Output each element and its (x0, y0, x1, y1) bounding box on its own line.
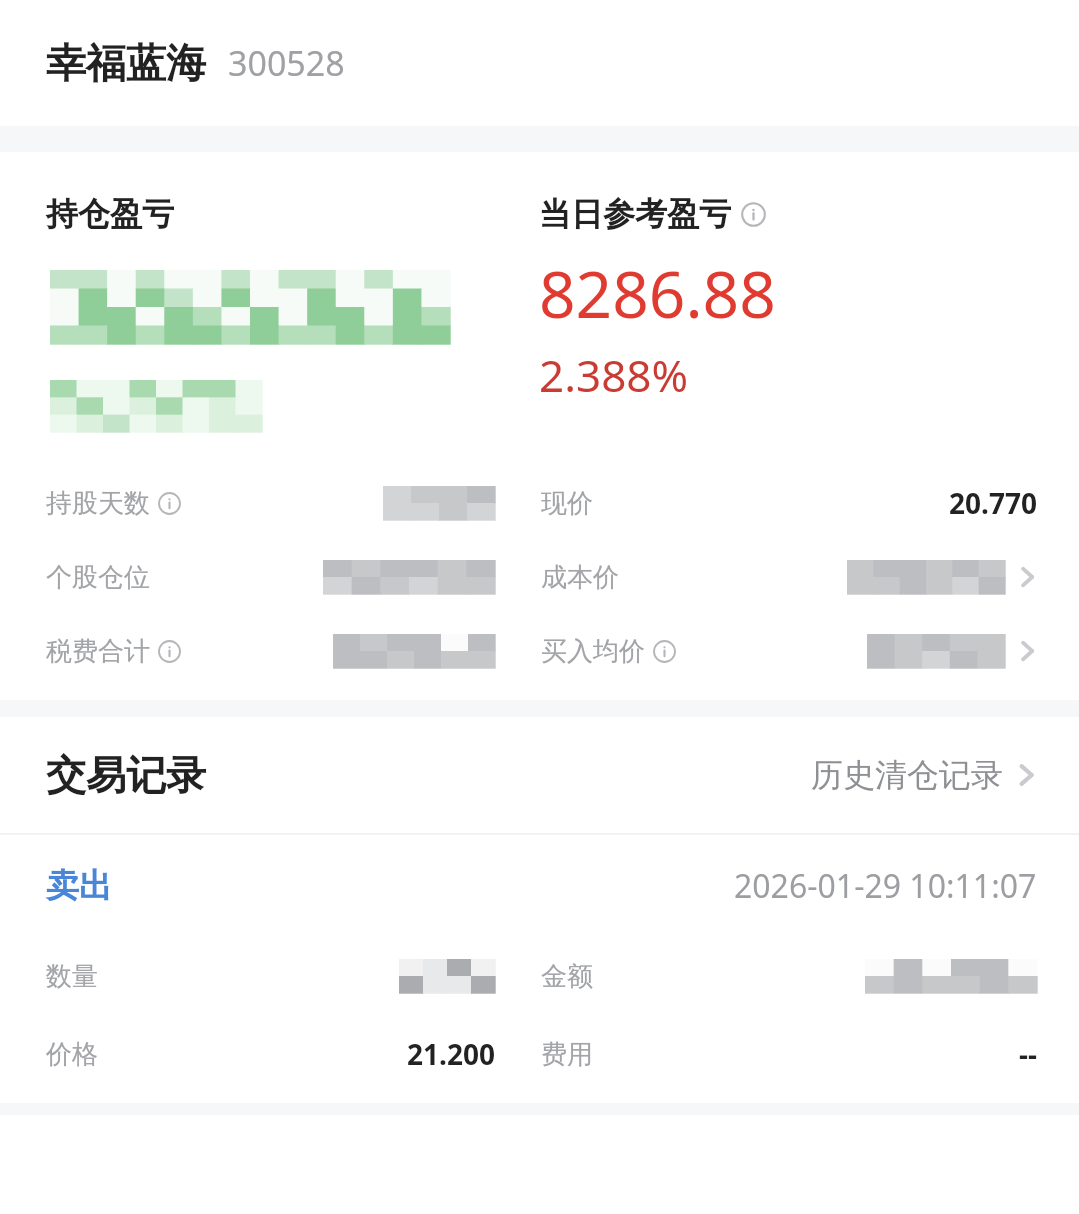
button[interactable]: 现价 (541, 466, 1037, 540)
staticText: 300528 (228, 40, 345, 86)
button[interactable]: 当日参考盈亏 (539, 152, 1079, 405)
staticText: 价格 (46, 1038, 98, 1071)
staticText: 幸福蓝海 (46, 38, 206, 88)
staticText: 2.388% (539, 345, 689, 405)
staticText: 金额 (541, 960, 593, 993)
button[interactable]: 买入均价 (541, 614, 1037, 688)
button[interactable]: 卖出 (0, 835, 1079, 937)
staticText: 费用 (541, 1038, 593, 1071)
staticText: 买入均价 (541, 635, 645, 668)
staticText: 21.200 (407, 1035, 495, 1073)
staticText: 8286.88 (539, 250, 776, 337)
staticText: 持股天数 (46, 487, 150, 520)
staticText: 成本价 (541, 561, 619, 594)
staticText: -- (1019, 1035, 1037, 1073)
button[interactable]: 价格 (46, 1015, 495, 1093)
button[interactable]: 个股仓位 (46, 540, 495, 614)
staticText: 个股仓位 (46, 561, 150, 594)
other: 查看详情 (1017, 561, 1037, 593)
button[interactable]: 历史清仓记录 (811, 755, 1037, 795)
staticText: 20.770 (949, 484, 1037, 522)
staticText: 数量 (46, 960, 98, 993)
button[interactable]: 持股天数 (46, 466, 495, 540)
button[interactable]: 数量 (46, 937, 495, 1015)
button[interactable]: 持仓盈亏 (0, 152, 539, 432)
staticText: 税费合计 (46, 635, 150, 668)
button[interactable]: 金额 (541, 937, 1037, 1015)
staticText: 现价 (541, 487, 593, 520)
staticText: 2026-01-29 10:11:07 (734, 864, 1037, 908)
staticText: 历史清仓记录 (811, 755, 1003, 795)
other: 查看详情 (1017, 635, 1037, 667)
button[interactable]: 税费合计 (46, 614, 495, 688)
button[interactable]: 费用 (541, 1015, 1037, 1093)
staticText: 卖出 (46, 865, 112, 907)
staticText: 交易记录 (46, 750, 206, 800)
staticText: 持仓盈亏 (46, 194, 174, 234)
button[interactable]: 幸福蓝海 (0, 0, 1079, 126)
staticText: 当日参考盈亏 (539, 194, 731, 234)
button[interactable]: 成本价 (541, 540, 1037, 614)
